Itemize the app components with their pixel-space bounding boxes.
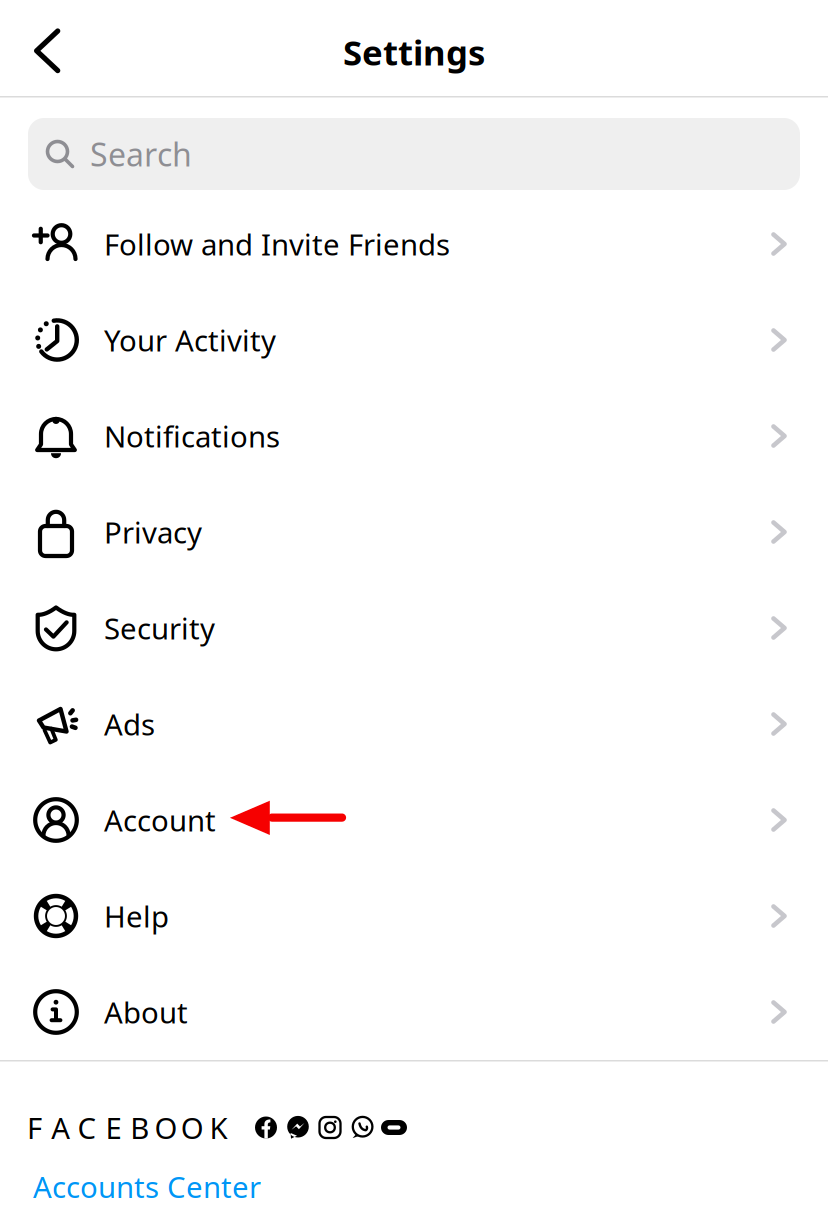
staticText: Notifications (104, 416, 280, 455)
button[interactable]: Your Activity (0, 292, 828, 388)
staticText: Accounts Center (33, 1167, 261, 1206)
button[interactable]: Privacy (0, 484, 828, 580)
staticText: Help (104, 896, 169, 935)
staticText: About (104, 992, 188, 1031)
button[interactable]: Ads (0, 676, 828, 772)
staticText: B (130, 1108, 149, 1147)
staticText: Ads (104, 704, 155, 743)
button[interactable]: Security (0, 580, 828, 676)
staticText: K (210, 1108, 228, 1147)
staticText: E (105, 1108, 121, 1147)
staticText: Your Activity (104, 320, 276, 359)
staticText: Settings (343, 29, 485, 75)
button[interactable]: About (0, 964, 828, 1060)
staticText: C (78, 1108, 97, 1147)
staticText: O (181, 1108, 204, 1147)
staticText: Search (90, 133, 192, 175)
button[interactable]: Follow and Invite Friends (0, 196, 828, 292)
staticText: F (27, 1108, 42, 1147)
staticText: Privacy (104, 512, 202, 551)
staticText: Security (104, 608, 215, 647)
button[interactable]: Search (28, 118, 800, 190)
button[interactable]: Account (0, 772, 828, 868)
staticText: A (51, 1108, 70, 1147)
staticText: O (154, 1108, 177, 1147)
staticText: Follow and Invite Friends (104, 224, 450, 263)
button[interactable]: Back (0, 0, 96, 96)
button[interactable]: Notifications (0, 388, 828, 484)
button[interactable]: Accounts Center (0, 1163, 828, 1209)
staticText: Account (104, 800, 216, 839)
button[interactable]: Help (0, 868, 828, 964)
